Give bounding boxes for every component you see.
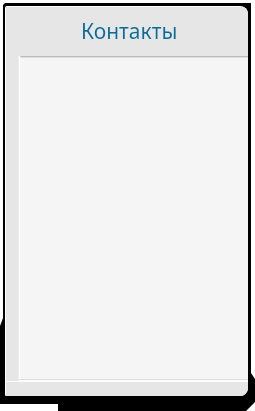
button[interactable]: Контакты [11,7,248,56]
staticText: Контакты [81,17,178,46]
